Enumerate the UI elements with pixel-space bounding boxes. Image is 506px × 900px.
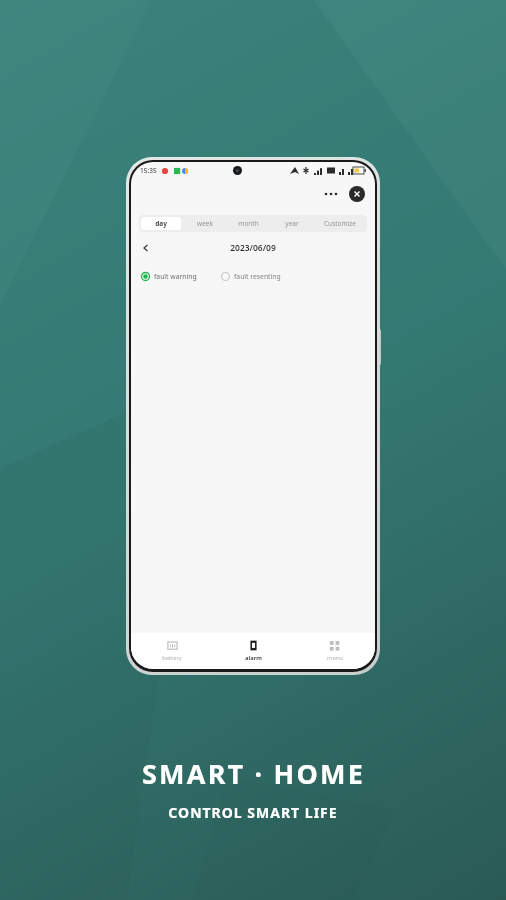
staticText: month — [238, 219, 259, 228]
staticText: fault warning — [154, 272, 197, 281]
button[interactable]: fault warning — [140, 270, 198, 283]
button[interactable]: Close — [349, 186, 365, 202]
staticText: fault resenting — [234, 272, 281, 281]
button[interactable]: year — [272, 217, 311, 230]
staticText: menu — [327, 654, 343, 662]
staticText: day — [155, 219, 167, 228]
button[interactable]: week — [185, 217, 225, 230]
staticText: battery — [162, 654, 182, 662]
staticText: 2023/06/09 — [230, 242, 276, 254]
staticText: Customize — [324, 219, 356, 228]
staticText: 15:35 — [140, 166, 157, 175]
button[interactable]: Customize — [315, 217, 365, 230]
button[interactable]: day — [141, 217, 181, 230]
button[interactable]: battery — [131, 633, 213, 669]
staticText: CONTROL SMART LIFE — [168, 803, 338, 822]
staticText: SMART · HOME — [142, 755, 365, 792]
button[interactable]: month — [229, 217, 268, 230]
button[interactable]: alarm — [213, 633, 294, 669]
staticText: week — [197, 219, 213, 228]
staticText: alarm — [245, 654, 262, 662]
button[interactable]: Previous day — [138, 240, 154, 256]
button[interactable]: fault resenting — [220, 270, 282, 283]
button[interactable]: More options — [321, 184, 341, 204]
button[interactable]: menu — [294, 633, 375, 669]
staticText: year — [285, 219, 299, 228]
